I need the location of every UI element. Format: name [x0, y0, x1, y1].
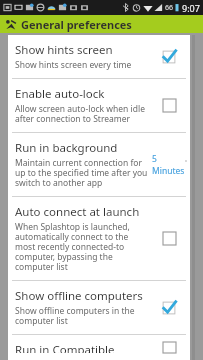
staticText: 5 Minutes	[152, 153, 186, 177]
button[interactable]: Enabled checkbox	[162, 50, 176, 64]
button[interactable]: Disabled checkbox	[163, 99, 176, 112]
button[interactable]: Enable auto-lock	[8, 79, 190, 132]
button[interactable]: Run in background	[8, 133, 190, 196]
staticText: General preferences	[21, 17, 132, 32]
staticText: Maintain current connection for up to th…	[15, 157, 148, 189]
button[interactable]: Run in Compatible mode	[8, 335, 190, 360]
button[interactable]: 5 Minutes	[152, 153, 186, 177]
button[interactable]: Show hints screen	[8, 35, 190, 78]
staticText: Show hints screen every time	[15, 59, 132, 71]
button[interactable]: Disabled checkbox	[163, 342, 176, 353]
staticText: Show hints screen	[15, 42, 113, 58]
other: App icon	[4, 18, 17, 31]
staticText: Enable auto-lock	[15, 86, 105, 102]
button[interactable]: Enabled checkbox	[162, 301, 176, 315]
staticText: Run in background	[15, 140, 118, 156]
button[interactable]: Show offline computers	[8, 281, 190, 334]
button[interactable]: Disabled checkbox	[163, 232, 176, 245]
staticText: Show offline computers	[15, 288, 143, 304]
button[interactable]: Auto connect at launch	[8, 197, 190, 280]
staticText: Run in Compatible mode	[15, 342, 148, 353]
staticText: 66	[165, 3, 174, 13]
staticText: 9:07	[182, 2, 200, 14]
staticText: Show offline computers in the computer l…	[15, 305, 148, 327]
staticText: Auto connect at launch	[15, 204, 140, 220]
staticText: When Splashtop is launched, automaticall…	[15, 221, 148, 273]
staticText: Allow screen auto-lock when idle after c…	[15, 103, 148, 125]
